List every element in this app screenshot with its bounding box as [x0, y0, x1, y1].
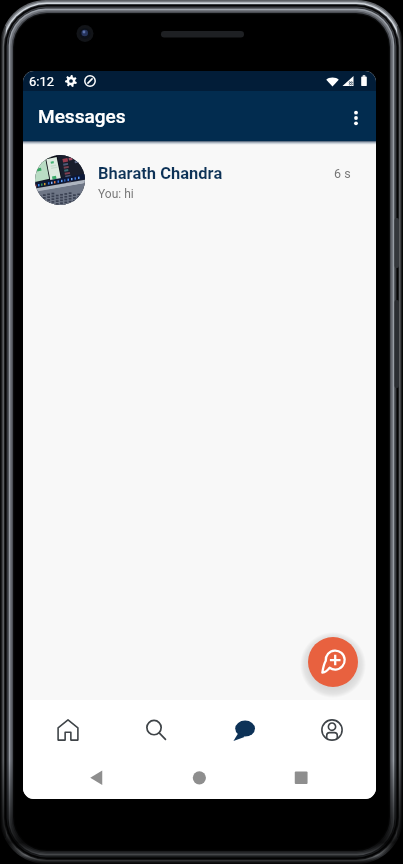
staticText: You: hi — [98, 187, 134, 201]
button[interactable]: Start new chat — [308, 637, 358, 687]
staticText: Messages — [38, 105, 126, 127]
staticText: Bharath Chandra — [98, 164, 223, 183]
button[interactable]: Search — [112, 700, 200, 757]
button[interactable]: Profile — [288, 700, 376, 757]
staticText: 6 s — [334, 166, 351, 181]
button[interactable]: Home — [23, 700, 112, 757]
button[interactable]: Messages — [200, 700, 288, 757]
button[interactable]: Bharath Chandra — [23, 141, 376, 218]
staticText: 6:12 — [29, 74, 55, 89]
button[interactable]: More options — [336, 96, 376, 136]
